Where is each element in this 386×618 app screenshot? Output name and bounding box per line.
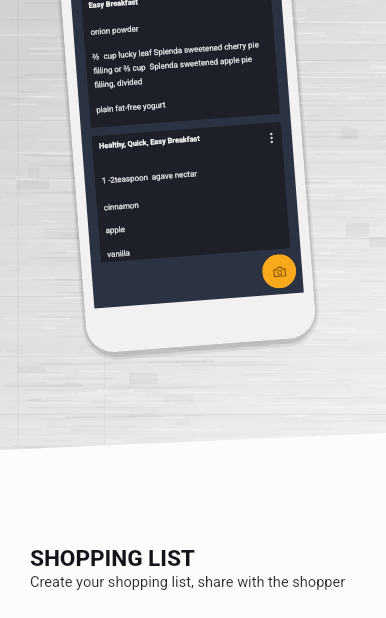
staticText: onion powder (90, 24, 140, 37)
button[interactable]: More options (262, 129, 281, 147)
staticText: filling, divided (94, 77, 143, 90)
staticText: apple (105, 225, 126, 235)
staticText: Healthy, Quick, Easy Breakfast (99, 134, 200, 150)
staticText: filling or ⅔ cup Splenda sweetened apple… (93, 54, 252, 77)
staticText: Easy Breakfast (88, 0, 139, 10)
staticText: 1 -2teaspoon agave nectar (101, 169, 198, 185)
button[interactable]: Easy Breakfast (75, 0, 280, 128)
staticText: SHOPPING LIST (30, 545, 195, 572)
staticText: cinnamon (103, 201, 140, 212)
staticText: ⅔ cup lucky leaf Splenda sweetened cherr… (92, 39, 259, 63)
staticText: vanilla (107, 248, 131, 259)
button[interactable]: Healthy, Quick, Easy Breakfast (91, 122, 290, 263)
button[interactable]: Add photo (261, 253, 297, 289)
staticText: plain fat-free yogurt (96, 100, 167, 115)
staticText: Create your shopping list, share with th… (30, 573, 346, 590)
